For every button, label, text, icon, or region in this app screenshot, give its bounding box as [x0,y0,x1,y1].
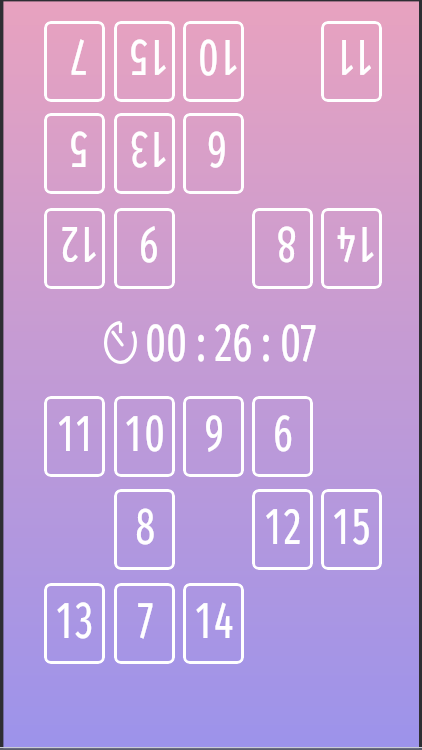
staticText: 6 [273,402,296,464]
staticText: 7 [137,589,157,651]
button[interactable]: 15 [114,21,175,102]
button[interactable]: 14 [183,583,244,664]
staticText: 12 [265,495,305,557]
staticText: 11 [335,27,372,89]
staticText: 12 [57,214,97,276]
button[interactable]: 10 [114,396,175,477]
staticText: 10 [126,402,168,464]
staticText: 00 : 26 : 07 [145,311,317,371]
staticText: 13 [56,589,97,651]
staticText: 6 [204,119,227,181]
staticText: 8 [135,495,158,557]
button[interactable]: 7 [114,583,175,664]
button[interactable]: 6 [183,113,244,194]
button[interactable]: 9 [114,208,175,289]
staticText: 10 [195,27,237,89]
staticText: 15 [126,27,167,89]
button[interactable]: 11 [321,21,382,102]
button[interactable]: 12 [44,208,105,289]
staticText: 13 [126,119,167,181]
button[interactable]: 12 [252,489,313,570]
button[interactable]: 7 [44,21,105,102]
button[interactable]: 11 [44,396,105,477]
button[interactable]: 13 [44,583,105,664]
button[interactable]: 10 [183,21,244,102]
button[interactable]: 13 [114,113,175,194]
staticText: 7 [67,27,87,89]
button[interactable]: 5 [44,113,105,194]
other: Timer [104,321,137,364]
staticText: 9 [135,214,158,276]
button[interactable]: 6 [252,396,313,477]
button[interactable]: 14 [321,208,382,289]
button[interactable]: 15 [321,489,382,570]
staticText: 5 [66,119,88,181]
staticText: 14 [195,589,236,651]
button[interactable]: 8 [252,208,313,289]
staticText: 14 [333,214,374,276]
staticText: 8 [273,214,296,276]
staticText: 9 [204,402,227,464]
button[interactable]: 8 [114,489,175,570]
staticText: 11 [58,402,95,464]
button[interactable]: 9 [183,396,244,477]
staticText: 15 [333,495,374,557]
